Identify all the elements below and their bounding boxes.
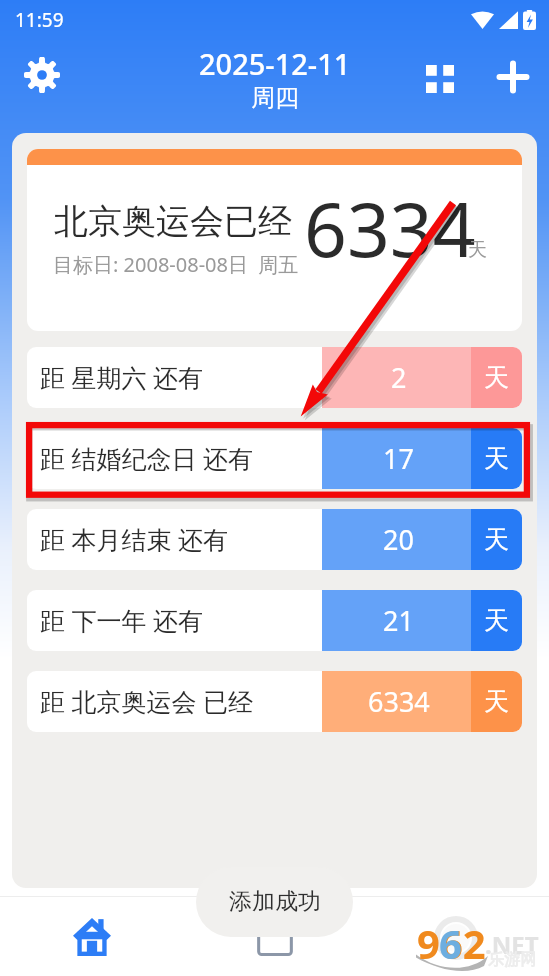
button[interactable]: 距 结婚纪念日 还有 [27,428,522,489]
staticText: 距 结婚纪念日 还有 [40,441,254,475]
staticText: 天 [484,605,509,636]
staticText: 2 [391,359,407,396]
button[interactable]: 距 下一年 还有 [27,590,522,651]
staticText: 天 [484,443,509,474]
staticText: 天 [484,362,509,393]
button[interactable]: 北京奥运会已经 [27,149,522,331]
staticText: 6 [439,916,462,970]
staticText: 2025-12-11 [199,44,351,83]
staticText: 添加成功 [229,887,321,916]
staticText: 乐游网 [488,950,536,970]
staticText: 17 [383,440,414,477]
staticText: 北京奥运会已经 [54,200,292,243]
staticText: 距 星期六 还有 [40,360,204,394]
staticText: 天 [468,238,487,262]
button[interactable]: 距 本月结束 还有 [27,509,522,570]
staticText: 天 [484,524,509,555]
button[interactable]: Profile [366,897,549,976]
staticText: 距 本月结束 还有 [40,522,229,556]
staticText: 距 北京奥运会 已经 [40,684,254,718]
staticText: 21 [383,602,414,639]
staticText: 20 [383,521,414,558]
button[interactable]: Settings [20,53,64,97]
staticText: 天 [484,686,509,717]
button[interactable]: Home [0,897,183,976]
button[interactable]: Grid view [418,57,462,101]
button[interactable]: 距 星期六 还有 [27,347,522,408]
staticText: 目标日: 2008-08-08日 周五 [53,251,299,278]
staticText: 6334 [304,177,476,279]
staticText: .NET [485,928,539,961]
staticText: 6334 [368,683,430,720]
staticText: 11:59 [15,7,64,33]
button[interactable]: Calendar [183,897,366,976]
staticText: 962 [417,916,486,970]
button[interactable]: 距 北京奥运会 已经 [27,671,522,732]
staticText: 周四 [251,83,299,113]
staticText: 距 下一年 还有 [40,603,204,637]
button[interactable]: Add [491,55,535,99]
